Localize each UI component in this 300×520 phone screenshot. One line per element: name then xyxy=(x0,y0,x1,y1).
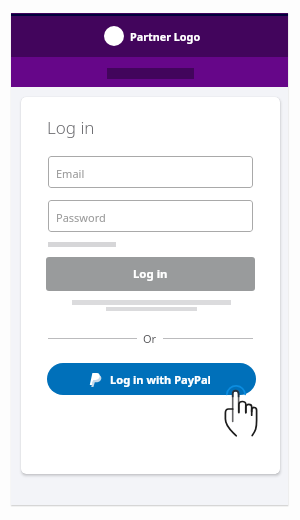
staticText: Partner Logo xyxy=(130,29,201,44)
other: Tap xyxy=(222,380,262,440)
button[interactable]: Log in xyxy=(46,257,255,291)
button[interactable]: Email xyxy=(48,156,253,188)
staticText: Password xyxy=(56,210,106,225)
staticText: Email xyxy=(56,166,85,181)
button[interactable]: Log in with PayPal xyxy=(47,363,256,395)
staticText: Or xyxy=(143,331,157,346)
staticText: Log in xyxy=(47,116,95,139)
staticText: Log in xyxy=(133,266,168,282)
button[interactable]: Password xyxy=(48,200,253,232)
staticText: Log in with PayPal xyxy=(110,372,211,387)
